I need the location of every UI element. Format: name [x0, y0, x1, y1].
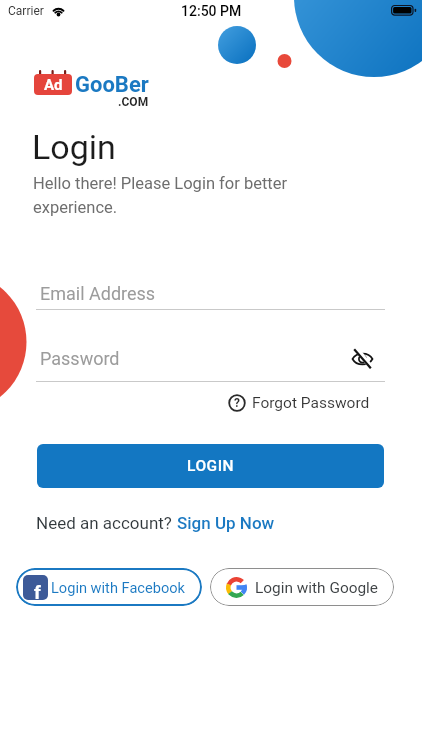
button[interactable]: f: [16, 568, 202, 606]
staticText: Carrier: [8, 4, 44, 18]
staticText: f: [34, 581, 41, 600]
button[interactable]: ?: [228, 394, 370, 412]
staticText: Forgot Password: [252, 394, 370, 412]
staticText: GooBer: [75, 72, 149, 98]
button[interactable]: Login with Google: [210, 568, 394, 606]
staticText: Login with Google: [255, 579, 378, 597]
button[interactable]: LOGIN: [37, 444, 384, 488]
staticText: ?: [234, 396, 240, 410]
staticText: Need an account?: [36, 513, 177, 533]
staticText: Login with Facebook: [51, 579, 185, 596]
button[interactable]: Sign Up Now: [177, 513, 275, 533]
staticText: Email Address: [40, 283, 156, 304]
staticText: 12:50 PM: [181, 3, 242, 19]
staticText: .COM: [118, 95, 149, 109]
staticText: Login: [32, 127, 116, 167]
staticText: Hello there! Please Login for better exp…: [33, 174, 288, 217]
button[interactable]: [351, 349, 374, 369]
staticText: Password: [40, 348, 120, 369]
staticText: LOGIN: [187, 457, 235, 475]
staticText: Ad: [44, 76, 63, 94]
